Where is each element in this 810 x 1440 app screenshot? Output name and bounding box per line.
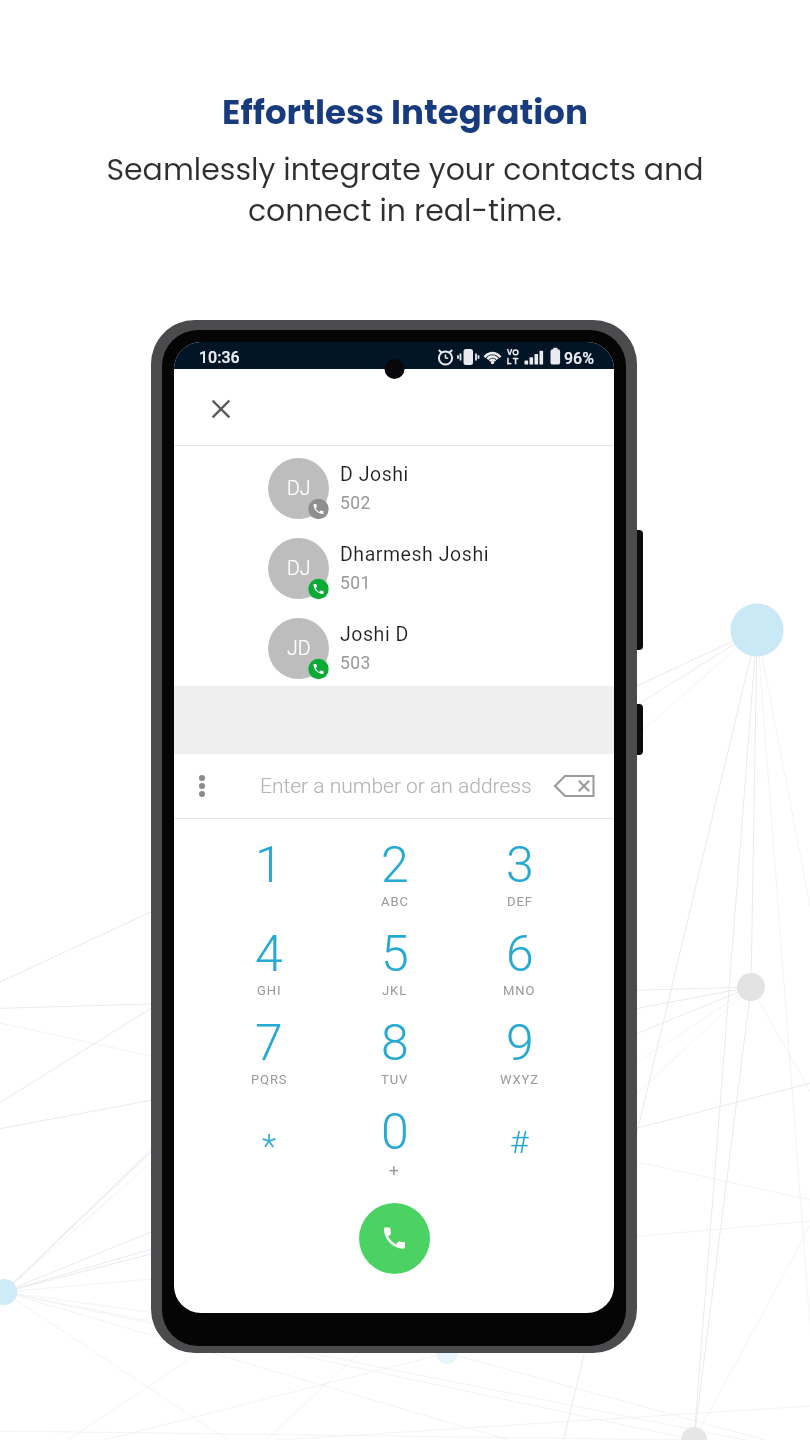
staticText: Joshi D <box>340 623 409 646</box>
staticText: Dharmesh Joshi <box>340 543 489 566</box>
button[interactable]: 0 <box>332 1103 457 1192</box>
staticText: 9 <box>506 1014 534 1073</box>
staticText: 7 <box>255 1014 283 1073</box>
button[interactable]: 5 <box>332 925 457 1014</box>
button[interactable]: 7 <box>206 1014 332 1103</box>
button[interactable]: DJ <box>174 526 614 606</box>
staticText: * <box>262 1127 277 1166</box>
button[interactable]: 6 <box>457 925 582 1014</box>
button[interactable]: 3 <box>457 836 582 925</box>
staticText: DJ <box>287 477 311 500</box>
staticText: Enter a number or an address <box>260 774 532 799</box>
staticText: 8 <box>381 1014 409 1073</box>
button[interactable]: 8 <box>332 1014 457 1103</box>
staticText: 3 <box>506 836 534 895</box>
button[interactable]: 1 <box>206 836 332 925</box>
staticText: # <box>510 1123 529 1161</box>
staticText: JKL <box>382 983 408 998</box>
button[interactable]: Backspace <box>534 754 614 818</box>
button[interactable]: Call <box>359 1203 430 1274</box>
staticText: 501 <box>340 573 371 594</box>
staticText: D Joshi <box>340 463 409 486</box>
staticText: 4 <box>255 925 283 984</box>
button[interactable]: JD <box>174 606 614 686</box>
staticText: TUV <box>381 1072 409 1087</box>
staticText: 96% <box>564 349 594 368</box>
staticText: 1 <box>255 836 283 895</box>
staticText: 6 <box>506 925 534 984</box>
staticText: 503 <box>340 653 371 674</box>
button[interactable]: 9 <box>457 1014 582 1103</box>
staticText: DJ <box>287 557 311 580</box>
staticText: Seamlessly integrate your contacts and c… <box>86 149 724 232</box>
button[interactable]: 4 <box>206 925 332 1014</box>
button[interactable]: DJ <box>174 446 614 526</box>
staticText: 2 <box>381 836 409 895</box>
button[interactable]: Close <box>201 389 241 429</box>
staticText: 0 <box>381 1103 409 1162</box>
staticText: 502 <box>340 493 371 514</box>
staticText: GHI <box>257 983 282 998</box>
staticText: DEF <box>507 894 533 909</box>
staticText: MNO <box>503 983 536 998</box>
staticText: 10:36 <box>199 348 240 367</box>
button[interactable]: * <box>206 1103 332 1192</box>
staticText: ABC <box>381 894 409 909</box>
button[interactable]: # <box>457 1103 582 1192</box>
staticText: 5 <box>381 925 409 984</box>
staticText: WXYZ <box>500 1072 539 1087</box>
staticText: JD <box>287 637 311 660</box>
staticText: Effortless Integration <box>222 88 588 136</box>
staticText: + <box>389 1160 400 1180</box>
staticText: PQRS <box>251 1072 288 1087</box>
button[interactable]: 2 <box>332 836 457 925</box>
button[interactable]: More options <box>174 754 230 818</box>
